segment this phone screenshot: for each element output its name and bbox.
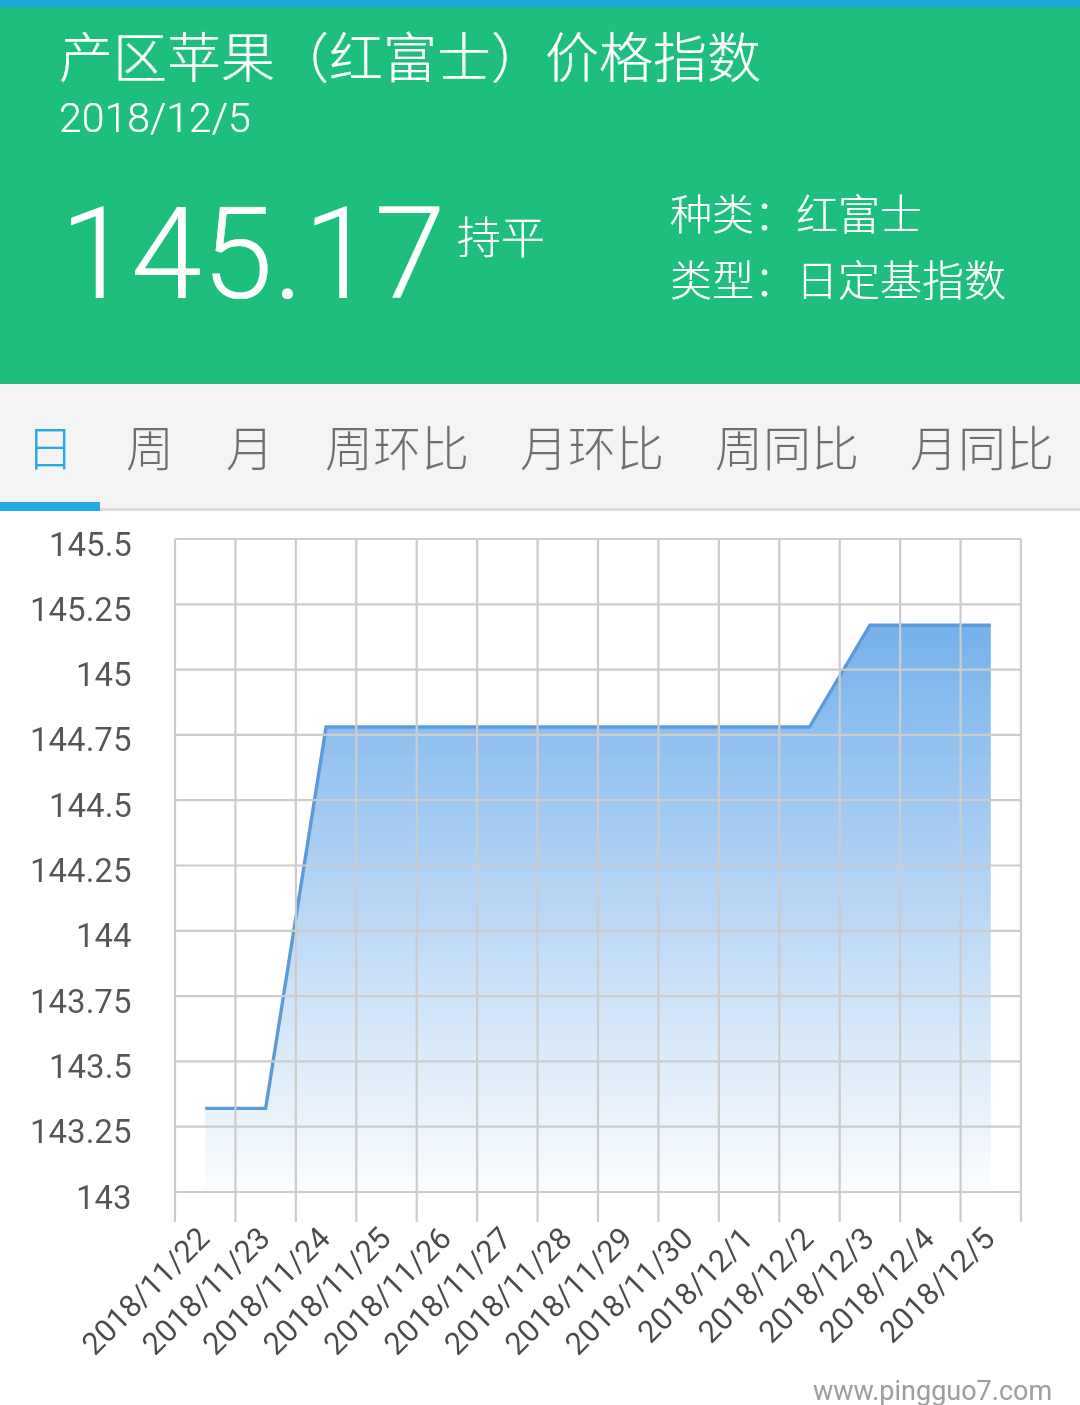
staticText: 种类：红富士: [670, 181, 923, 242]
staticText: 类型：日定基指数: [670, 247, 1007, 308]
staticText: 月环比: [520, 410, 665, 480]
button[interactable]: 周环比: [300, 384, 495, 511]
staticText: 产区苹果（红富士）价格指数: [59, 15, 761, 93]
staticText: 持平: [457, 203, 545, 267]
staticText: 145.17: [60, 179, 446, 329]
button[interactable]: 月: [200, 384, 300, 511]
staticText: 周: [126, 410, 175, 480]
button[interactable]: 周: [100, 384, 200, 511]
staticText: 周环比: [325, 410, 470, 480]
button[interactable]: 月环比: [495, 384, 690, 511]
staticText: 周同比: [715, 410, 860, 480]
button[interactable]: 周同比: [690, 384, 885, 511]
staticText: 月: [226, 410, 275, 480]
button[interactable]: 日: [0, 384, 100, 511]
button[interactable]: 月同比: [885, 384, 1080, 511]
staticText: 月同比: [910, 410, 1055, 480]
staticText: 2018/12/5: [59, 94, 251, 142]
staticText: 日: [26, 410, 75, 480]
